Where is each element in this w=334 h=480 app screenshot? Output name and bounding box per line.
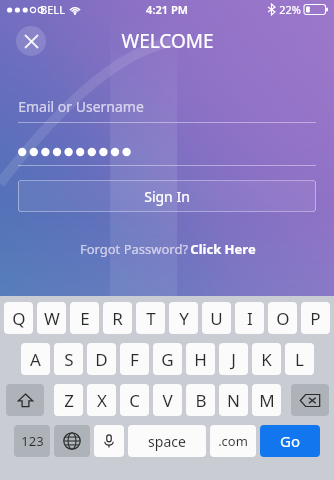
staticText: M	[259, 389, 275, 412]
staticText: Sign In	[144, 187, 190, 206]
staticText: Z	[64, 389, 74, 412]
staticText: S	[64, 348, 74, 371]
button[interactable]: Q	[4, 302, 33, 334]
button[interactable]: Delete	[291, 384, 329, 416]
button[interactable]: S	[54, 343, 83, 375]
staticText: Go	[280, 431, 300, 451]
staticText: E	[80, 307, 90, 330]
button[interactable]: B	[186, 384, 215, 416]
staticText: O	[276, 307, 290, 330]
button[interactable]: E	[70, 302, 99, 334]
staticText: Click Here	[190, 240, 256, 258]
button[interactable]: R	[103, 302, 132, 334]
button[interactable]: O	[268, 302, 297, 334]
staticText: 4:21 PM	[146, 2, 188, 17]
staticText: L	[295, 348, 304, 371]
button[interactable]: Z	[54, 384, 83, 416]
button[interactable]: Y	[169, 302, 198, 334]
staticText: 22%	[279, 2, 301, 17]
button[interactable]: C	[120, 384, 149, 416]
button[interactable]: P	[301, 302, 330, 334]
staticText: R	[112, 307, 123, 330]
staticText: K	[261, 348, 272, 371]
button[interactable]	[18, 139, 316, 165]
button[interactable]: W	[37, 302, 66, 334]
button[interactable]: X	[87, 384, 116, 416]
staticText: J	[231, 348, 236, 371]
staticText: N	[227, 389, 240, 412]
button[interactable]: G	[153, 343, 182, 375]
staticText: H	[194, 348, 207, 371]
button[interactable]: K	[252, 343, 281, 375]
button[interactable]: D	[87, 343, 116, 375]
button[interactable]: T	[136, 302, 165, 334]
button[interactable]: Shift	[6, 384, 44, 416]
staticText: T	[146, 307, 156, 330]
staticText: WELCOME	[121, 28, 214, 54]
staticText: F	[130, 348, 139, 371]
staticText: P	[310, 307, 321, 330]
staticText: .com	[218, 432, 248, 450]
button[interactable]: A	[21, 343, 50, 375]
button[interactable]: U	[202, 302, 231, 334]
button[interactable]: Dictate	[94, 425, 124, 457]
button[interactable]: space	[128, 425, 206, 457]
button[interactable]: .com	[210, 425, 256, 457]
button[interactable]: V	[153, 384, 182, 416]
button[interactable]: Numbers	[14, 425, 50, 457]
button[interactable]: M	[252, 384, 281, 416]
staticText: X	[97, 389, 107, 412]
staticText: I	[247, 307, 253, 330]
button[interactable]: Go	[260, 425, 320, 457]
button[interactable]: L	[285, 343, 314, 375]
staticText: Q	[12, 307, 26, 330]
staticText: W	[44, 307, 60, 330]
staticText: G	[161, 348, 174, 371]
staticText: Y	[179, 307, 189, 330]
staticText: BELL	[40, 2, 65, 17]
button[interactable]: H	[186, 343, 215, 375]
staticText: V	[162, 389, 173, 412]
staticText: space	[148, 432, 186, 451]
staticText: 123	[21, 432, 44, 450]
staticText: A	[30, 348, 41, 371]
button[interactable]: N	[219, 384, 248, 416]
button[interactable]: F	[120, 343, 149, 375]
staticText: U	[210, 307, 223, 330]
button[interactable]: Close	[16, 26, 46, 56]
staticText: C	[129, 389, 140, 412]
button[interactable]: I	[235, 302, 264, 334]
button[interactable]: J	[219, 343, 248, 375]
button[interactable]: Email or Username	[18, 90, 316, 122]
staticText: D	[95, 348, 108, 371]
staticText: Forgot Password?	[78, 240, 190, 258]
button[interactable]: Forgot Password?	[0, 240, 334, 258]
staticText: B	[195, 389, 207, 412]
button[interactable]: Sign In	[18, 180, 316, 212]
button[interactable]: Next keyboard	[54, 425, 90, 457]
staticText: Email or Username	[18, 97, 144, 116]
